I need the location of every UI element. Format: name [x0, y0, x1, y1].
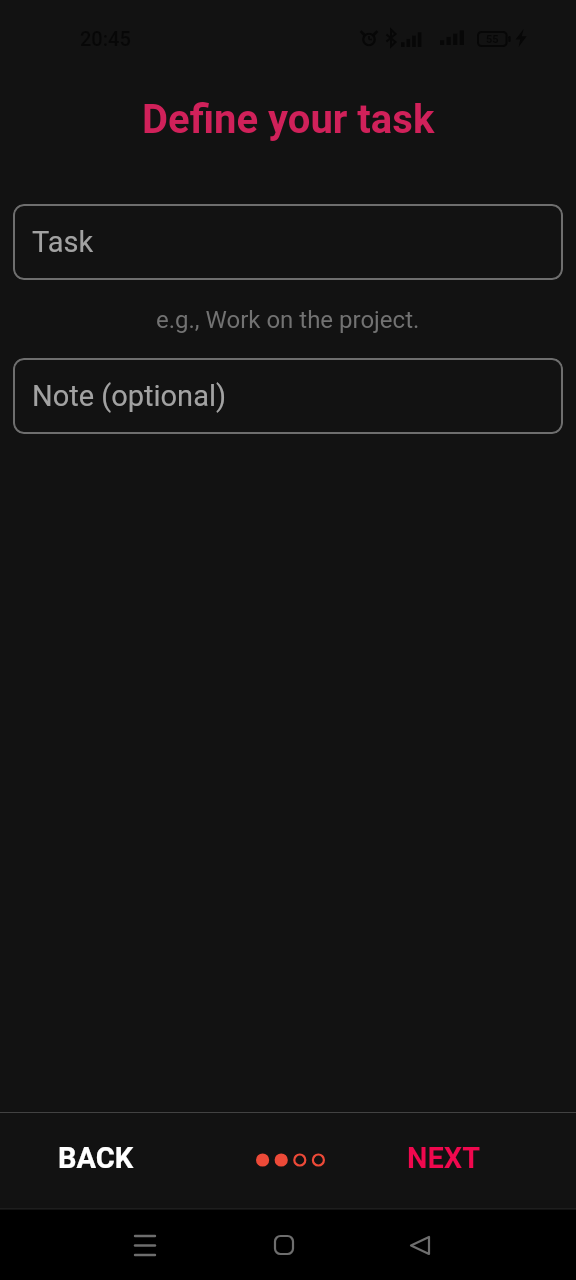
staticText: 20:45 [80, 27, 131, 50]
button[interactable]: Recent apps [110, 1210, 180, 1280]
staticText: 55 [486, 33, 499, 46]
staticText: NEXT [407, 1141, 481, 1175]
staticText: Define your task [142, 96, 435, 143]
staticText: e.g., Work on the project. [156, 306, 420, 334]
staticText: BACK [58, 1141, 134, 1175]
staticText: Note (optional) [32, 379, 227, 413]
button[interactable]: Task [13, 204, 563, 280]
button[interactable]: Home [249, 1210, 319, 1280]
button[interactable]: Back [385, 1210, 455, 1280]
button[interactable]: NEXT [362, 1109, 525, 1206]
staticText: Task [32, 225, 94, 259]
button[interactable]: BACK [14, 1109, 177, 1206]
button[interactable]: Note (optional) [13, 358, 563, 434]
